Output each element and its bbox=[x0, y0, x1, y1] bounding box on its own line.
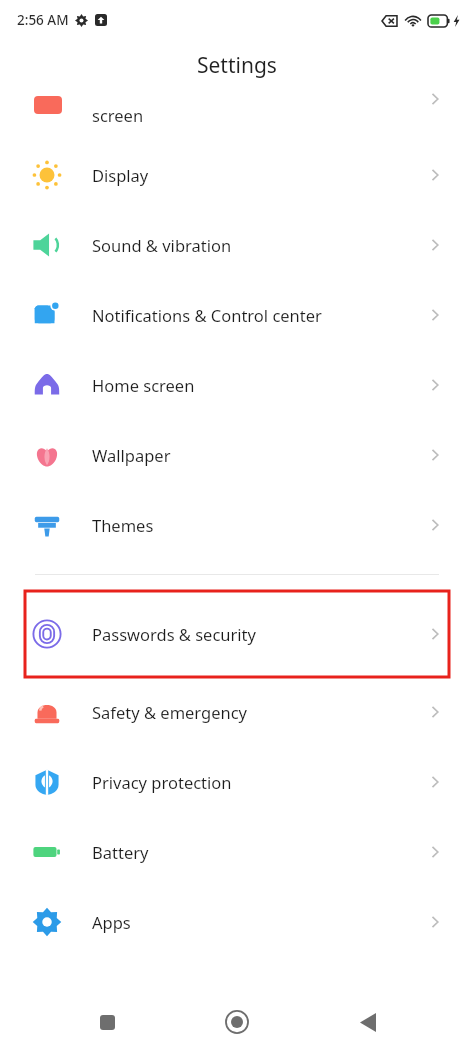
staticText: Display bbox=[92, 164, 428, 186]
button[interactable]: Home screen bbox=[0, 350, 474, 420]
staticText: 2:56 AM bbox=[17, 11, 69, 29]
button[interactable]: Apps bbox=[0, 887, 474, 957]
staticText: Settings bbox=[197, 51, 277, 80]
staticText: Safety & emergency bbox=[92, 701, 428, 723]
staticText: Privacy protection bbox=[92, 771, 428, 793]
button[interactable]: Home bbox=[213, 998, 261, 1046]
button[interactable]: Themes bbox=[0, 490, 474, 560]
button[interactable]: Wallpaper bbox=[0, 420, 474, 490]
staticText: Notifications & Control center bbox=[92, 304, 428, 326]
button[interactable]: screen bbox=[0, 90, 474, 140]
button[interactable]: Recent apps bbox=[83, 998, 131, 1046]
staticText: Themes bbox=[92, 514, 428, 536]
button[interactable]: Notifications & Control center bbox=[0, 280, 474, 350]
staticText: Battery bbox=[92, 841, 428, 863]
staticText: Passwords & security bbox=[92, 623, 428, 645]
button[interactable]: Display bbox=[0, 140, 474, 210]
button[interactable]: Battery bbox=[0, 817, 474, 887]
button[interactable]: Passwords & security bbox=[25, 591, 449, 677]
staticText: screen bbox=[92, 104, 144, 126]
staticText: Sound & vibration bbox=[92, 234, 428, 256]
button[interactable]: Safety & emergency bbox=[0, 677, 474, 747]
button[interactable]: Privacy protection bbox=[0, 747, 474, 817]
button[interactable]: Sound & vibration bbox=[0, 210, 474, 280]
staticText: Apps bbox=[92, 911, 428, 933]
button[interactable]: Back bbox=[344, 998, 392, 1046]
staticText: Wallpaper bbox=[92, 444, 428, 466]
staticText: Home screen bbox=[92, 374, 428, 396]
